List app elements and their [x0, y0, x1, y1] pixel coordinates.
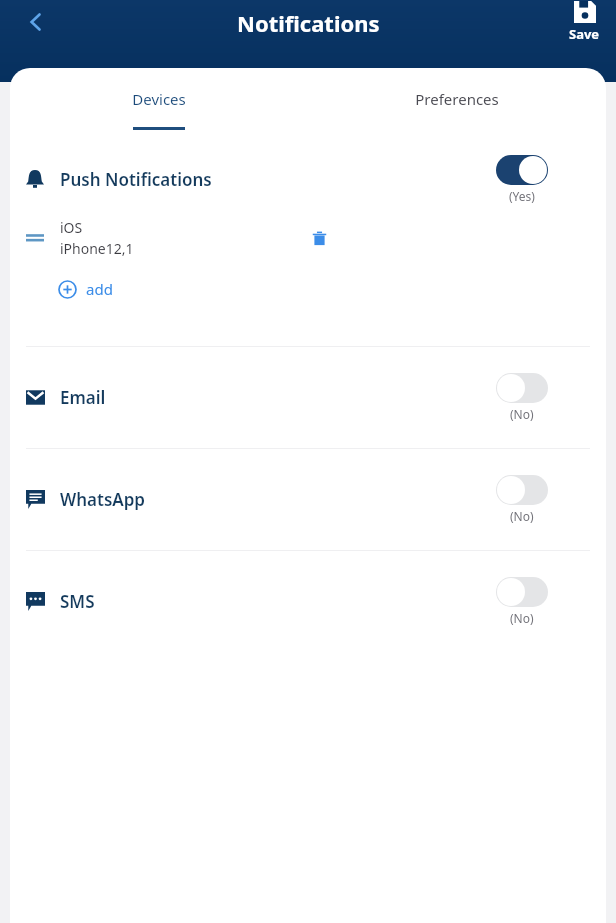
staticText: iOS — [60, 218, 83, 237]
button[interactable]: Push Notifications — [10, 152, 606, 206]
staticText: SMS — [60, 590, 95, 613]
button[interactable]: Delete device — [304, 223, 334, 253]
staticText: Email — [60, 386, 106, 409]
staticText: Save — [569, 25, 600, 43]
button[interactable]: iOS — [10, 216, 606, 260]
button[interactable]: add — [58, 274, 113, 304]
button[interactable]: Toggle off — [496, 577, 548, 626]
staticText: iPhone12,1 — [60, 239, 134, 258]
button[interactable]: Email — [10, 347, 606, 448]
staticText: Push Notifications — [60, 168, 212, 191]
staticText: (No) — [510, 406, 534, 422]
button[interactable]: Toggle off — [496, 475, 548, 524]
button[interactable]: Back — [14, 0, 58, 44]
staticText: (No) — [510, 610, 534, 626]
staticText: add — [86, 279, 113, 299]
staticText: Devices — [132, 89, 186, 109]
button[interactable]: WhatsApp — [10, 449, 606, 550]
button[interactable]: Toggle off — [496, 373, 548, 422]
staticText: (Yes) — [509, 188, 535, 204]
button[interactable]: Save — [569, 1, 600, 43]
button[interactable]: Preferences — [308, 68, 606, 130]
button[interactable]: Toggle on — [496, 155, 548, 204]
button[interactable]: SMS — [10, 551, 606, 652]
staticText: Notifications — [237, 8, 380, 38]
staticText: (No) — [510, 508, 534, 524]
staticText: WhatsApp — [60, 488, 145, 511]
staticText: Preferences — [415, 89, 499, 109]
button[interactable]: Devices — [10, 68, 308, 130]
